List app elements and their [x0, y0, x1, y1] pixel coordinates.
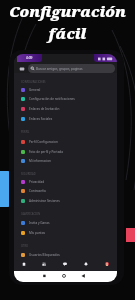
staticText: 4:09	[26, 56, 33, 60]
button[interactable]: Home	[14, 259, 34, 269]
button[interactable]: Profile	[96, 259, 117, 269]
button[interactable]: Usuarios Bloqueados	[14, 250, 117, 259]
staticText: Enlaces de Invitación	[29, 107, 60, 111]
button[interactable]: Enlaces de Invitación	[14, 104, 117, 113]
staticText: Enlaces Sociales	[29, 117, 53, 121]
staticText: Mi informacion	[29, 159, 52, 163]
staticText: General	[29, 88, 41, 92]
staticText: SEGURIDAD	[21, 172, 36, 176]
button[interactable]: General	[14, 85, 117, 94]
button[interactable]: Notifications	[75, 259, 96, 269]
staticText: Usuarios Bloqueados	[29, 253, 60, 257]
button[interactable]: Buscar amigos, grupos, paginas	[28, 64, 115, 73]
staticText: Privacidad	[29, 180, 45, 184]
staticText: CONFIGURACIONES	[21, 80, 46, 84]
staticText: OTRO	[21, 244, 29, 248]
button[interactable]: Mi informacion	[14, 156, 117, 165]
staticText: Perfil Configuracion	[29, 140, 58, 144]
staticText: fácil	[48, 23, 87, 43]
button[interactable]: Enlaces Sociales	[14, 114, 117, 123]
staticText: Administrar Sesiones	[29, 199, 60, 203]
button[interactable]: Invita y Ganas	[14, 218, 117, 227]
staticText: GAMIFICACION	[21, 212, 41, 216]
button[interactable]: Chat	[54, 259, 75, 269]
button[interactable]: Privacidad	[14, 177, 117, 186]
staticText: Buscar amigos, grupos, paginas	[36, 67, 83, 71]
button[interactable]: Perfil Configuracion	[14, 137, 117, 146]
button[interactable]: Mis puntos	[14, 228, 117, 237]
button[interactable]: Foto de perfil y Portada	[14, 147, 117, 156]
button[interactable]: Contraseña	[14, 186, 117, 195]
button[interactable]: People	[34, 259, 54, 269]
staticText: Invita y Ganas	[29, 221, 50, 225]
staticText: Contraseña	[29, 189, 46, 193]
button[interactable]: Administrar Sesiones	[14, 196, 117, 205]
staticText: Configuración de notificaciones	[29, 97, 75, 101]
staticText: PERFIL	[21, 130, 30, 134]
button[interactable]: Configuración de notificaciones	[14, 94, 117, 103]
staticText: Foto de perfil y Portada	[29, 150, 64, 154]
button[interactable]: Menu	[19, 66, 25, 72]
staticText: Mis puntos	[29, 231, 46, 235]
staticText: Configuración	[9, 1, 126, 21]
